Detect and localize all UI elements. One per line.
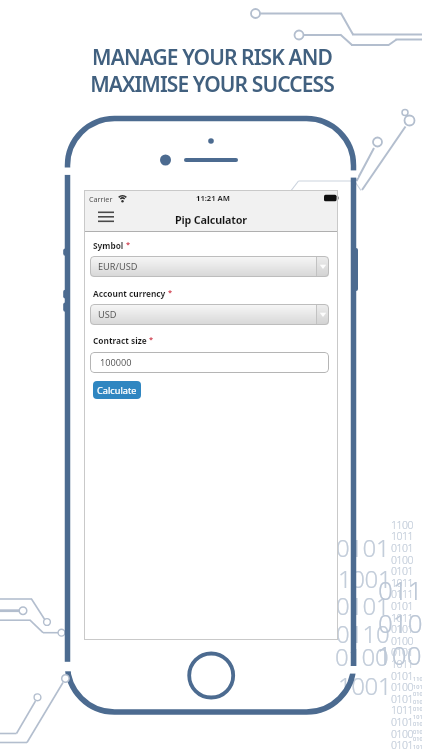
staticText: 0100 [391, 553, 413, 567]
staticText: 1011 [391, 529, 413, 543]
staticText: USD [98, 308, 117, 321]
staticText: 1100 [413, 675, 422, 683]
staticText: 1100 [391, 518, 413, 532]
button[interactable]: Calculate [93, 381, 141, 399]
staticText: 0101 [391, 715, 413, 729]
staticText: 0100 [391, 634, 413, 648]
staticText: 0100 [413, 728, 422, 736]
staticText: 0101 [413, 690, 422, 698]
staticText: 0101 [391, 692, 413, 706]
staticText: 0100 [335, 640, 389, 673]
staticText: 1011 [391, 576, 413, 590]
staticText: EUR/USD [98, 260, 138, 273]
staticText: 0101 [391, 738, 413, 750]
staticText: 0101 [336, 531, 390, 564]
staticText: MANAGE YOUR RISK AND [92, 43, 332, 72]
staticText: 0101 [391, 541, 413, 555]
staticText: 0101 [391, 599, 413, 613]
staticText: * [147, 334, 154, 344]
staticText: * [124, 239, 131, 249]
staticText: Contract size [93, 335, 147, 346]
staticText: 1011 [391, 611, 413, 625]
staticText: 1001 [338, 562, 392, 595]
staticText: 0110 [336, 617, 390, 650]
staticText: 11:21 AM [196, 193, 230, 203]
staticText: Calculate [97, 384, 137, 397]
staticText: 100000 [100, 356, 132, 369]
staticText: Symbol [93, 240, 124, 251]
staticText: 0101 [336, 589, 390, 622]
staticText: 0100 [391, 727, 413, 741]
staticText: 0100 [391, 680, 413, 694]
staticText: Carrier [89, 194, 113, 204]
staticText: 0111 [378, 572, 422, 607]
staticText: Account currency [93, 288, 166, 299]
staticText: 0101 [391, 669, 413, 683]
staticText: 0101 [378, 605, 422, 640]
staticText: 1011 [391, 657, 413, 671]
button[interactable]: USD [90, 304, 329, 325]
staticText: MAXIMISE YOUR SUCCESS [90, 70, 334, 99]
button[interactable]: 100000 [90, 352, 329, 373]
staticText: Pip Calculator [175, 212, 247, 227]
staticText: 0101 [413, 735, 422, 743]
staticText: 0101 [413, 720, 422, 728]
staticText: 1001 [338, 669, 392, 702]
staticText: * [166, 287, 173, 297]
staticText: 0101 [391, 622, 413, 636]
staticText: 1001 [377, 637, 422, 672]
staticText: 1011 [413, 683, 422, 691]
staticText: 0101 [391, 645, 413, 659]
staticText: 0111 [391, 587, 413, 601]
staticText: 0101 [391, 564, 413, 578]
button[interactable]: EUR/USD [90, 256, 329, 277]
staticText: 1011 [413, 743, 422, 750]
staticText: 0101 [413, 705, 422, 713]
staticText: 1011 [413, 713, 422, 721]
staticText: 0100 [413, 698, 422, 706]
staticText: 1011 [391, 703, 413, 717]
